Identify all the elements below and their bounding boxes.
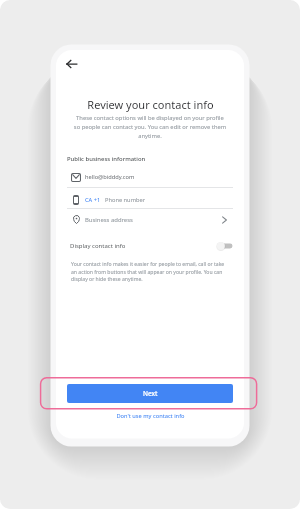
button[interactable]: hello@bidddy.com — [67, 168, 233, 186]
staticText: Your contact info makes it easier for pe… — [71, 261, 226, 282]
staticText: Public business information — [67, 155, 146, 163]
staticText: Display contact info — [70, 242, 126, 250]
button[interactable]: Business address — [67, 210, 233, 229]
button[interactable]: Next — [67, 384, 233, 403]
staticText: CA +1 — [85, 196, 101, 204]
button[interactable]: Display contact info — [70, 237, 233, 255]
staticText: Review your contact info — [55, 97, 246, 112]
staticText: Next — [143, 389, 158, 398]
staticText: Phone number — [105, 196, 146, 204]
button[interactable]: CA +1 — [67, 190, 233, 210]
staticText: Business address — [85, 216, 133, 224]
staticText: Don't use my contact info — [116, 412, 185, 420]
staticText: hello@bidddy.com — [85, 173, 135, 181]
button[interactable]: Back — [62, 56, 78, 72]
button[interactable]: Don't use my contact info — [105, 410, 196, 421]
staticText: These contact options will be displayed … — [40, 114, 260, 140]
